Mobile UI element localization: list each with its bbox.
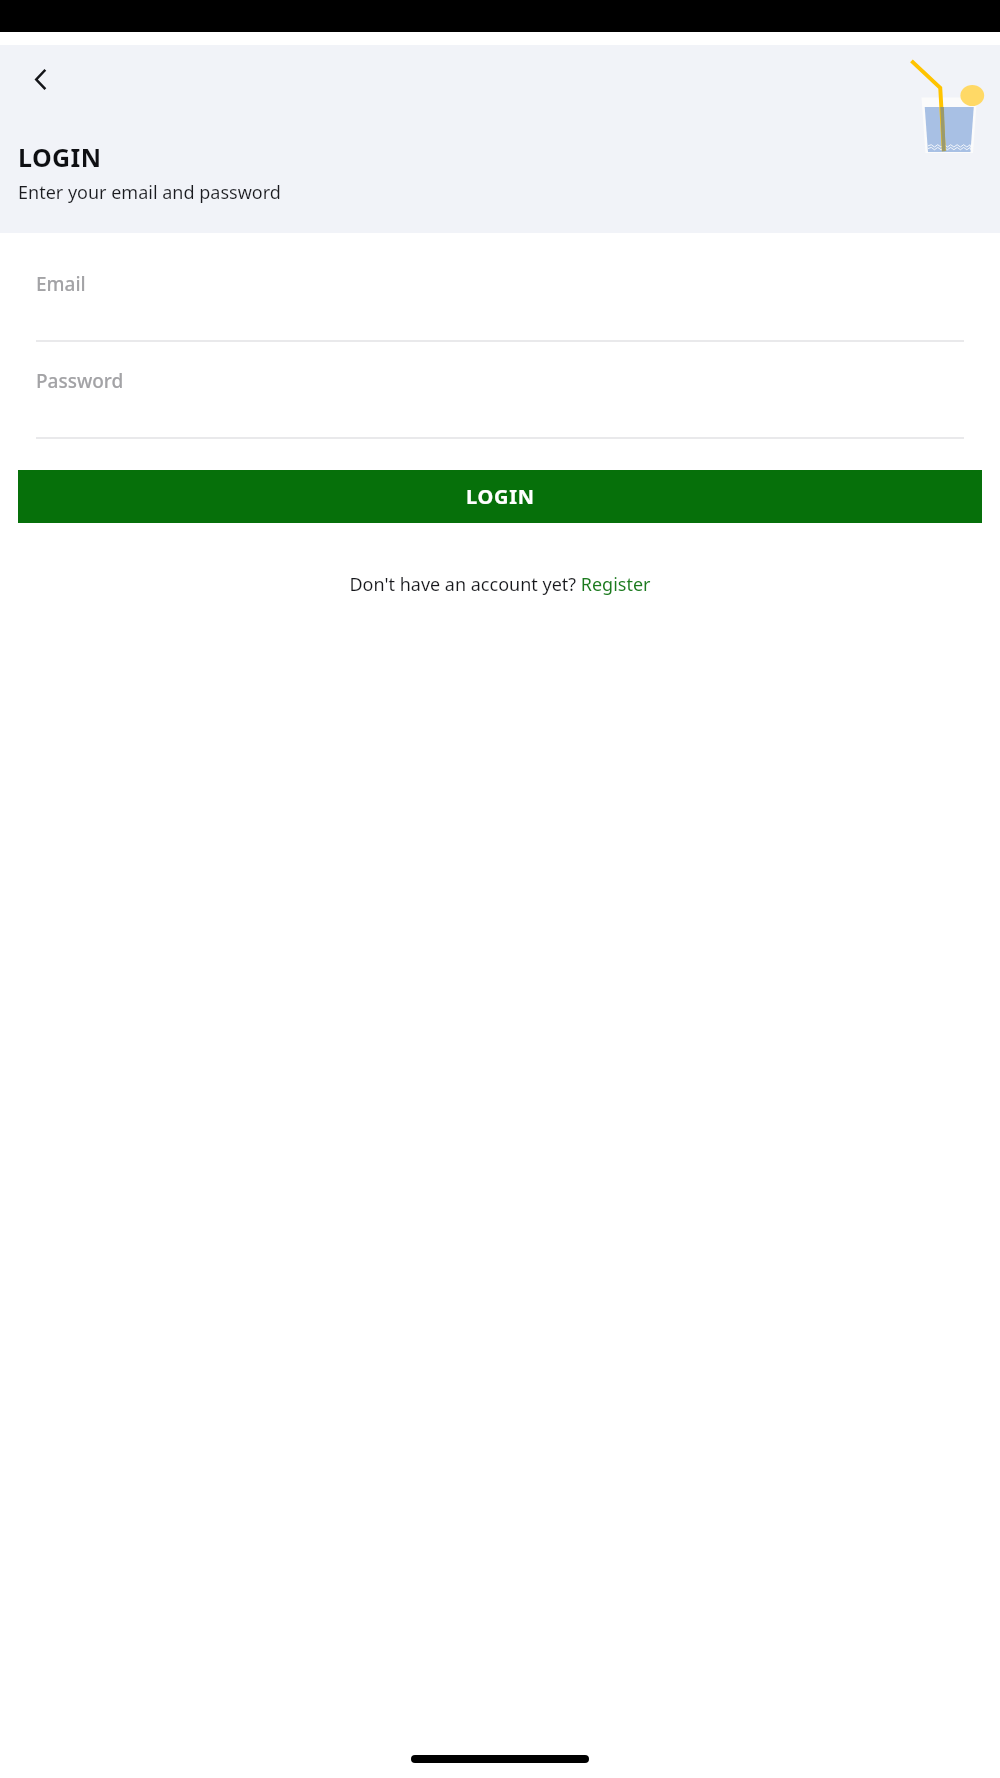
staticText: LOGIN [466, 483, 535, 510]
button[interactable]: Back [14, 53, 66, 105]
button[interactable]: Don't have an account yet? Register [341, 567, 659, 602]
staticText: LOGIN [18, 140, 102, 174]
button[interactable]: Password [0, 358, 1000, 439]
staticText: Password [36, 368, 124, 394]
button[interactable]: Email [0, 261, 1000, 342]
staticText: Don't have an account yet? Register [349, 572, 651, 597]
staticText: Enter your email and password [18, 180, 281, 205]
staticText: Email [36, 271, 86, 297]
button[interactable]: LOGIN [18, 470, 982, 523]
